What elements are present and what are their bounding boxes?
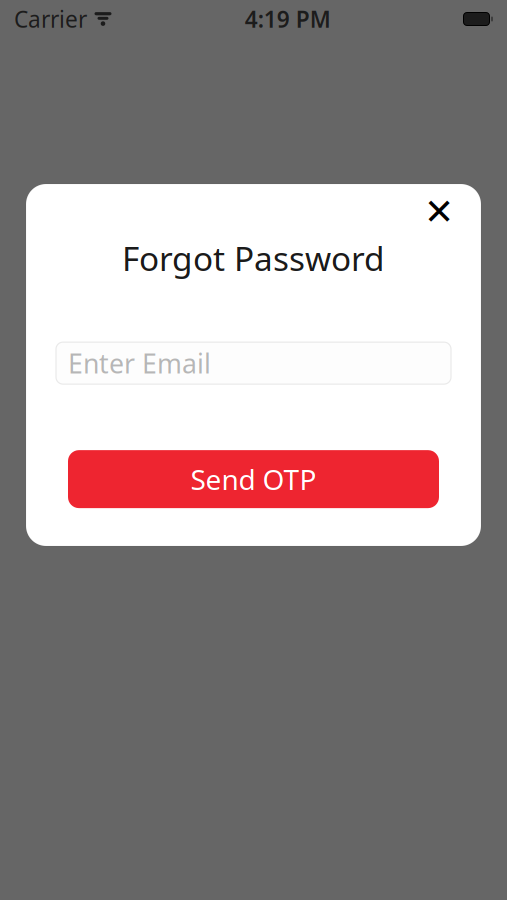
staticText: 4:19 PM: [245, 4, 331, 34]
staticText: Send OTP: [190, 460, 316, 498]
staticText: Forgot Password: [122, 236, 385, 280]
button[interactable]: Send OTP: [68, 450, 439, 508]
button[interactable]: Close: [417, 190, 461, 234]
staticText: Enter Email: [68, 345, 211, 381]
staticText: ✕: [424, 191, 454, 232]
staticText: Carrier: [14, 4, 87, 34]
